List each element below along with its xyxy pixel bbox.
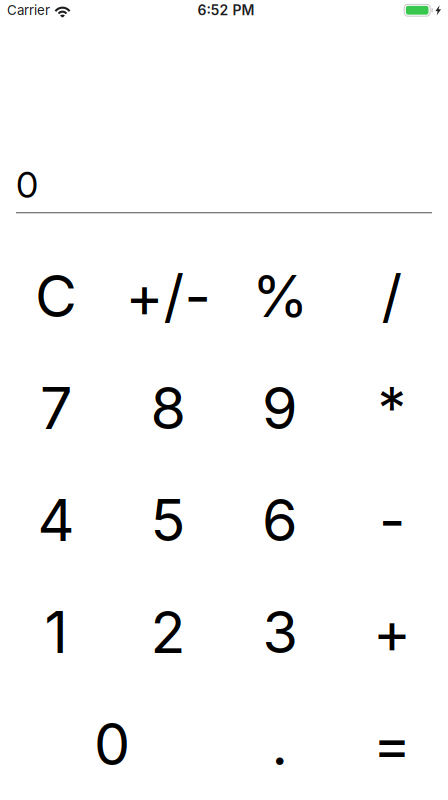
staticText: +/-: [125, 262, 210, 331]
staticText: 3: [262, 598, 297, 667]
staticText: 0: [94, 710, 130, 779]
button[interactable]: 0: [0, 688, 224, 800]
button[interactable]: 6: [224, 464, 336, 576]
button[interactable]: 9: [224, 352, 336, 464]
button[interactable]: 1: [0, 576, 112, 688]
button[interactable]: 3: [224, 576, 336, 688]
button[interactable]: %: [224, 240, 336, 352]
staticText: .: [271, 710, 288, 779]
button[interactable]: C: [0, 240, 112, 352]
staticText: 1: [44, 598, 67, 667]
staticText: =: [373, 710, 411, 779]
button[interactable]: 8: [112, 352, 224, 464]
button[interactable]: =: [336, 688, 448, 800]
staticText: 7: [40, 374, 72, 443]
button[interactable]: +: [336, 576, 448, 688]
staticText: 5: [150, 486, 185, 555]
staticText: /: [381, 262, 402, 331]
button[interactable]: 4: [0, 464, 112, 576]
staticText: +: [373, 598, 411, 667]
staticText: 2: [150, 598, 185, 667]
staticText: -: [379, 486, 405, 555]
button[interactable]: -: [336, 464, 448, 576]
staticText: C: [35, 262, 77, 331]
staticText: 6: [262, 486, 298, 555]
staticText: 6:52 PM: [197, 2, 254, 19]
staticText: 8: [150, 374, 185, 443]
button[interactable]: 7: [0, 352, 112, 464]
staticText: *: [377, 374, 406, 443]
button[interactable]: *: [336, 352, 448, 464]
staticText: Carrier: [7, 2, 50, 18]
staticText: 0: [16, 163, 38, 207]
button[interactable]: 2: [112, 576, 224, 688]
staticText: 9: [262, 374, 298, 443]
staticText: 4: [37, 486, 74, 555]
button[interactable]: .: [224, 688, 336, 800]
staticText: %: [252, 262, 308, 331]
button[interactable]: 5: [112, 464, 224, 576]
button[interactable]: +/-: [112, 240, 224, 352]
button[interactable]: /: [336, 240, 448, 352]
